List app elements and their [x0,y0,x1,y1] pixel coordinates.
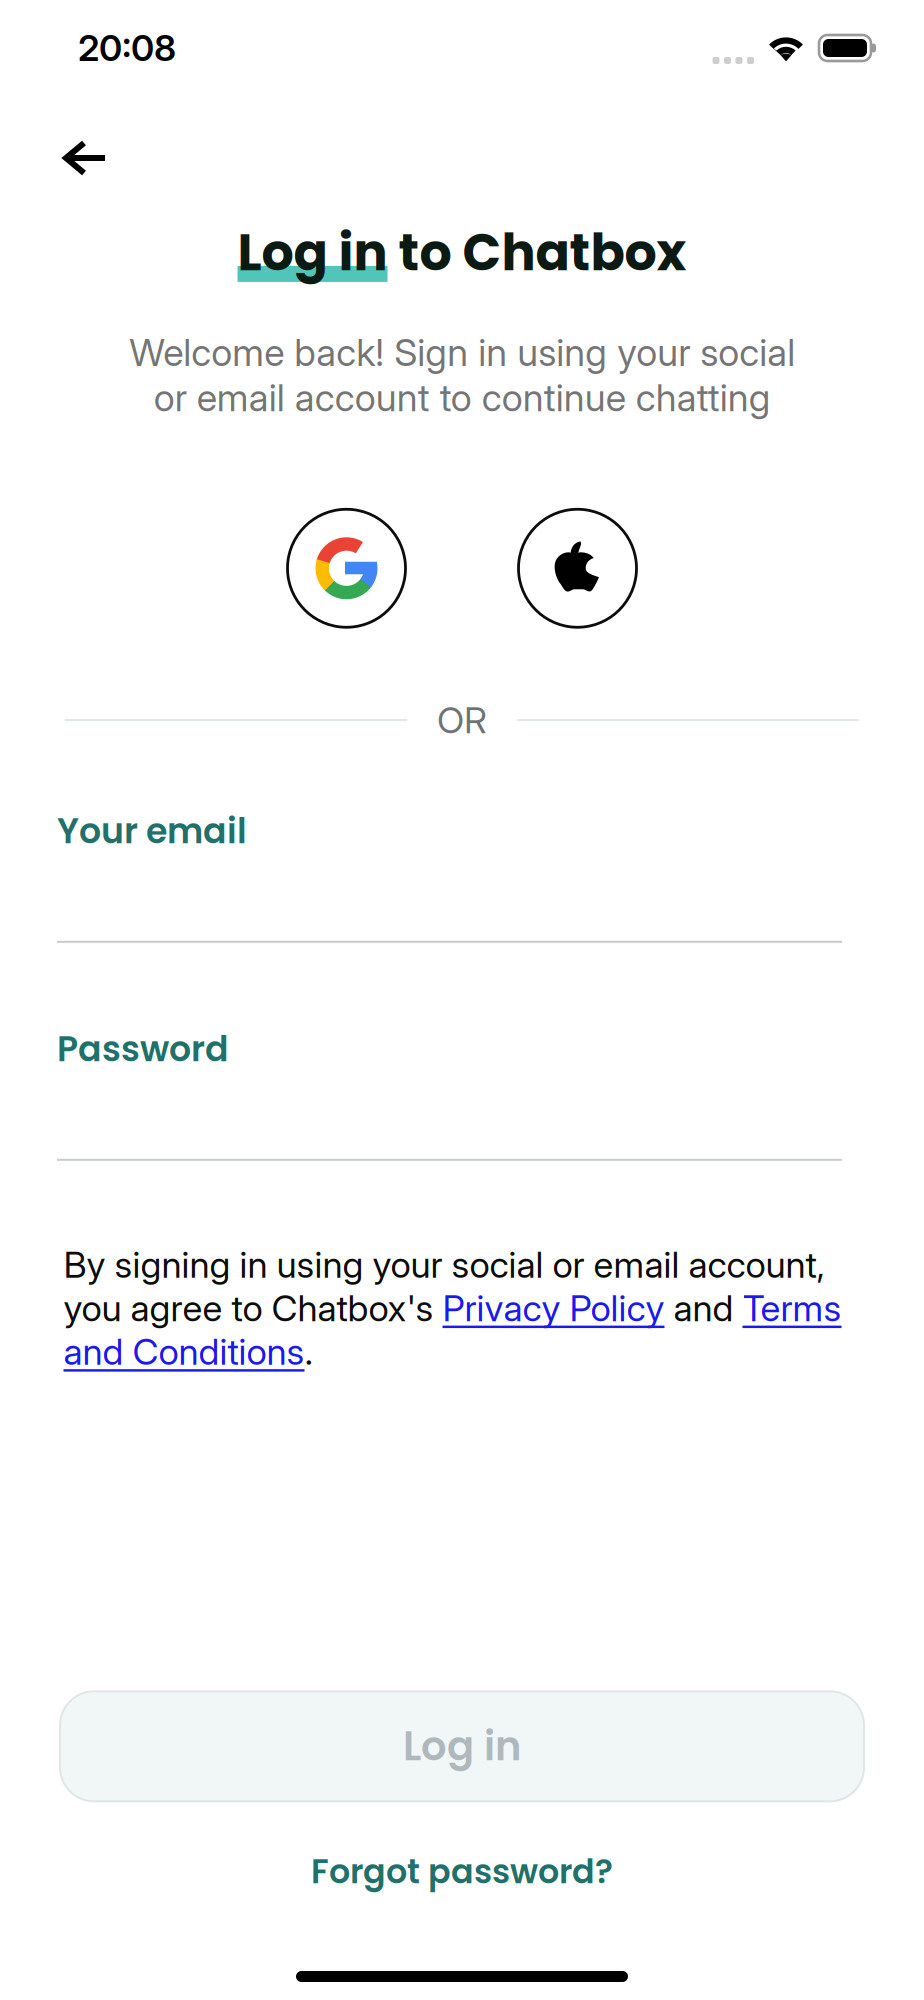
staticText: Log in [237,217,387,288]
button[interactable]: Sign in with Apple [518,509,636,627]
staticText: Your email [57,807,247,855]
staticText: 20:08 [78,26,176,70]
staticText: to Chatbox [387,217,686,288]
staticText: OR [437,698,487,742]
button[interactable]: Sign in with Google [287,509,405,627]
button[interactable]: Back [44,96,129,180]
button[interactable]: Forgot password? [0,1826,924,1917]
staticText: Log in [403,1718,521,1774]
staticText: Forgot password? [311,1848,613,1895]
button[interactable]: Log in [60,1691,864,1801]
staticText: By signing in using your social or email… [63,1243,841,1373]
staticText: Welcome back! Sign in using your social … [129,330,795,420]
staticText: Password [57,1025,229,1073]
